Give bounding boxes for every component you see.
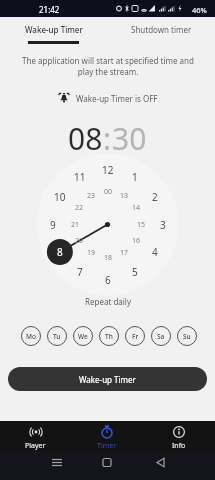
button[interactable]: Timer: [71, 421, 143, 453]
staticText: 3: [160, 218, 166, 232]
staticText: 23: [87, 191, 96, 201]
button[interactable]: Shutdown timer: [107, 17, 215, 45]
button[interactable]: Wake-up Timer: [0, 17, 107, 45]
staticText: Wake-up Timer is OFF: [76, 93, 158, 104]
staticText: Th: [105, 332, 113, 341]
button[interactable]: Sa: [151, 326, 171, 346]
staticText: 11: [74, 170, 86, 184]
staticText: Tu: [53, 332, 61, 341]
button[interactable]: We: [73, 326, 93, 346]
staticText: 2: [152, 190, 158, 204]
staticText: 17: [120, 248, 129, 258]
staticText: Wake-up Timer: [25, 24, 83, 35]
staticText: Fr: [132, 332, 139, 341]
staticText: 12: [102, 163, 114, 177]
staticText: Shutdown timer: [131, 24, 192, 35]
staticText: 7: [77, 265, 83, 279]
staticText: :: [103, 118, 112, 159]
staticText: 8: [57, 245, 63, 259]
button[interactable]: Fr: [125, 326, 145, 346]
staticText: 20: [75, 236, 84, 246]
staticText: 15: [137, 220, 146, 230]
staticText: The application will start at specified …: [22, 55, 194, 77]
staticText: We: [78, 332, 88, 341]
staticText: 5: [132, 265, 138, 279]
button[interactable]: Mo: [21, 326, 41, 346]
staticText: Timer: [97, 441, 117, 451]
staticText: Player: [25, 441, 46, 451]
button[interactable]: Su: [177, 326, 197, 346]
staticText: Su: [183, 332, 191, 341]
staticText: Sa: [157, 332, 165, 341]
button[interactable]: Player: [0, 421, 71, 453]
staticText: 30: [112, 118, 147, 159]
staticText: 9: [50, 218, 56, 232]
staticText: Repeat daily: [85, 296, 131, 307]
staticText: 46%: [192, 5, 207, 15]
staticText: 6: [105, 273, 111, 287]
staticText: 13: [120, 191, 129, 201]
staticText: 19: [87, 248, 96, 258]
staticText: 4: [152, 245, 158, 259]
button[interactable]: Th: [99, 326, 119, 346]
staticText: 18: [104, 253, 113, 263]
staticText: 21: [71, 220, 80, 230]
button[interactable]: Tu: [47, 326, 67, 346]
staticText: 1: [132, 170, 138, 184]
staticText: Wake-up Timer: [79, 374, 136, 385]
staticText: Info: [172, 441, 186, 451]
staticText: 14: [132, 203, 141, 213]
button[interactable]: Wake-up Timer: [8, 367, 207, 391]
staticText: 16: [132, 236, 141, 246]
button[interactable]: Info: [143, 421, 215, 453]
staticText: 21:42: [39, 4, 60, 15]
staticText: 10: [54, 190, 66, 204]
staticText: 08: [68, 118, 103, 159]
staticText: 22: [75, 203, 84, 213]
staticText: Mo: [26, 332, 36, 341]
staticText: 00: [104, 187, 113, 197]
